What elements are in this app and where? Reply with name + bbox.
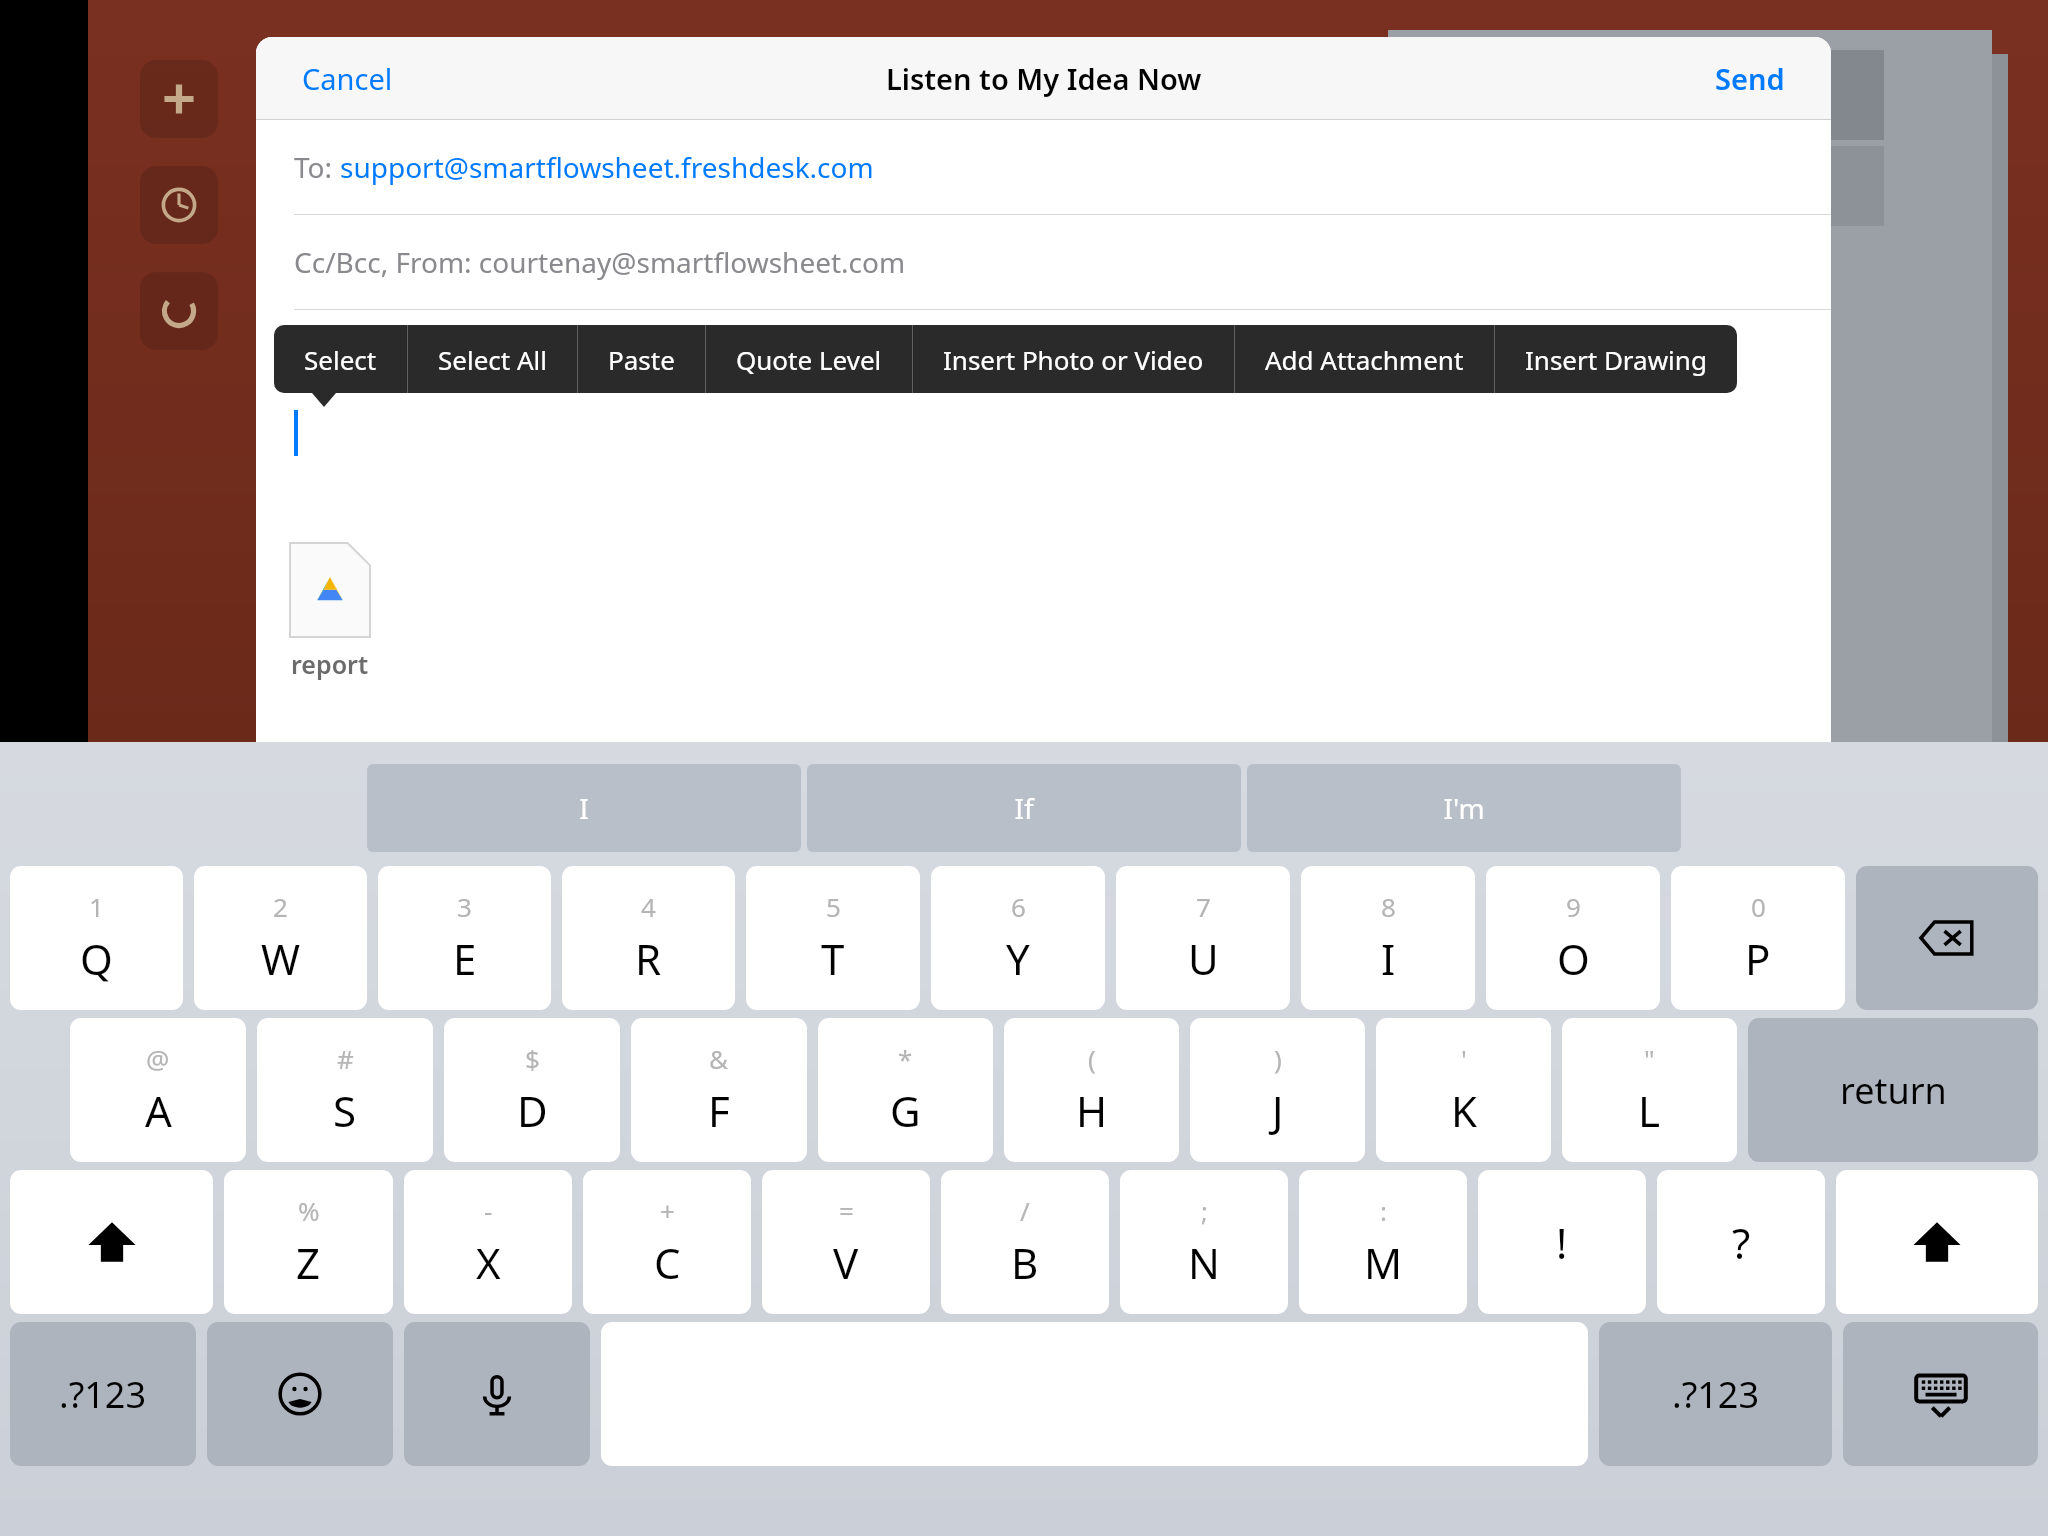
staticText: 9 bbox=[1566, 889, 1581, 924]
staticText: # bbox=[337, 1041, 354, 1076]
staticText: " bbox=[1644, 1041, 1655, 1076]
button[interactable]: T bbox=[746, 866, 920, 1010]
staticText: E bbox=[453, 930, 477, 987]
staticText: G bbox=[890, 1082, 921, 1139]
button[interactable]: Select All bbox=[408, 325, 577, 393]
button[interactable]: Shift bbox=[1836, 1170, 2038, 1314]
staticText: Add Attachment bbox=[1265, 342, 1464, 377]
button[interactable]: Z bbox=[224, 1170, 393, 1314]
button[interactable]: Add Attachment bbox=[1235, 325, 1494, 393]
button[interactable]: W bbox=[194, 866, 367, 1010]
staticText: + bbox=[660, 1193, 675, 1228]
staticText: N bbox=[1188, 1234, 1220, 1291]
staticText: L bbox=[1638, 1082, 1661, 1139]
staticText: If bbox=[1014, 789, 1034, 827]
staticText: J bbox=[1272, 1082, 1284, 1139]
button[interactable]: Select bbox=[274, 325, 407, 393]
button[interactable]: F bbox=[631, 1018, 807, 1162]
button[interactable]: X bbox=[404, 1170, 572, 1314]
button[interactable]: report attachment bbox=[290, 537, 370, 681]
staticText: Send bbox=[1715, 59, 1785, 98]
staticText: S bbox=[333, 1082, 357, 1139]
button[interactable]: History bbox=[140, 166, 218, 244]
button[interactable]: Q bbox=[10, 866, 183, 1010]
button[interactable]: Dictation bbox=[404, 1322, 590, 1466]
staticText: Y bbox=[1006, 930, 1030, 987]
staticText: .?123 bbox=[1672, 1370, 1760, 1419]
button[interactable]: I bbox=[1301, 866, 1475, 1010]
button[interactable]: S bbox=[257, 1018, 433, 1162]
button[interactable]: G bbox=[818, 1018, 993, 1162]
staticText: C bbox=[654, 1234, 681, 1291]
button[interactable]: return bbox=[1748, 1018, 2038, 1162]
staticText: Z bbox=[296, 1234, 321, 1291]
button[interactable]: Refresh bbox=[140, 272, 218, 350]
staticText: 2 bbox=[273, 889, 288, 924]
staticText: ( bbox=[1088, 1041, 1096, 1076]
button[interactable]: L bbox=[1562, 1018, 1737, 1162]
staticText: 0 bbox=[1751, 889, 1766, 924]
button[interactable]: E bbox=[378, 866, 551, 1010]
button[interactable]: H bbox=[1004, 1018, 1179, 1162]
button[interactable]: Delete bbox=[1856, 866, 2038, 1010]
staticText: Quote Level bbox=[736, 342, 882, 377]
button[interactable]: D bbox=[444, 1018, 620, 1162]
button[interactable]: .?123 bbox=[1599, 1322, 1832, 1466]
button[interactable]: O bbox=[1486, 866, 1660, 1010]
staticText: 7 bbox=[1196, 889, 1211, 924]
staticText: 4 bbox=[641, 889, 656, 924]
button[interactable]: V bbox=[762, 1170, 930, 1314]
staticText: X bbox=[476, 1234, 501, 1291]
button[interactable]: If bbox=[807, 764, 1241, 852]
staticText: - bbox=[484, 1193, 493, 1228]
button[interactable]: M bbox=[1299, 1170, 1467, 1314]
button[interactable]: Insert Photo or Video bbox=[913, 325, 1234, 393]
staticText: To: bbox=[294, 148, 340, 186]
staticText: M bbox=[1364, 1234, 1403, 1291]
button[interactable]: I'm bbox=[1247, 764, 1681, 852]
button[interactable]: U bbox=[1116, 866, 1290, 1010]
button[interactable]: Add bbox=[140, 60, 218, 138]
button[interactable]: Shift bbox=[10, 1170, 213, 1314]
button[interactable]: To: bbox=[256, 120, 1831, 214]
button[interactable]: B bbox=[941, 1170, 1109, 1314]
staticText: 3 bbox=[457, 889, 472, 924]
button[interactable]: Cancel bbox=[294, 51, 401, 106]
button[interactable]: Hide keyboard bbox=[1843, 1322, 2038, 1466]
button[interactable]: ! bbox=[1478, 1170, 1646, 1314]
button[interactable]: P bbox=[1671, 866, 1845, 1010]
staticText: Q bbox=[80, 930, 113, 987]
button[interactable]: R bbox=[562, 866, 735, 1010]
button[interactable]: Emoji bbox=[207, 1322, 393, 1466]
button[interactable]: Quote Level bbox=[706, 325, 912, 393]
button[interactable]: ? bbox=[1657, 1170, 1825, 1314]
staticText: H bbox=[1076, 1082, 1108, 1139]
staticText: = bbox=[839, 1193, 854, 1228]
staticText: Select bbox=[304, 342, 377, 377]
button[interactable]: Send bbox=[1707, 51, 1793, 106]
staticText: 5 bbox=[826, 889, 841, 924]
staticText: P bbox=[1745, 930, 1771, 987]
button[interactable]: Insert Drawing bbox=[1495, 325, 1737, 393]
staticText: Listen to My Idea Now bbox=[886, 59, 1202, 98]
button[interactable]: Cc/Bcc, From: courtenay@smartflowsheet.c… bbox=[256, 215, 1831, 309]
staticText: F bbox=[708, 1082, 730, 1139]
button[interactable]: J bbox=[1190, 1018, 1365, 1162]
staticText: ! bbox=[1556, 1214, 1568, 1271]
staticText: 6 bbox=[1011, 889, 1026, 924]
button[interactable]: Y bbox=[931, 866, 1105, 1010]
staticText: I bbox=[579, 789, 589, 827]
staticText: Select All bbox=[438, 342, 547, 377]
button[interactable]: Paste bbox=[578, 325, 705, 393]
button[interactable]: K bbox=[1376, 1018, 1551, 1162]
button[interactable]: I bbox=[367, 764, 801, 852]
staticText: ) bbox=[1274, 1041, 1282, 1076]
button[interactable]: .?123 bbox=[10, 1322, 196, 1466]
staticText: Insert Photo or Video bbox=[943, 342, 1204, 377]
button[interactable]: C bbox=[583, 1170, 751, 1314]
staticText: T bbox=[821, 930, 845, 987]
button[interactable]: N bbox=[1120, 1170, 1288, 1314]
button[interactable]: A bbox=[70, 1018, 246, 1162]
